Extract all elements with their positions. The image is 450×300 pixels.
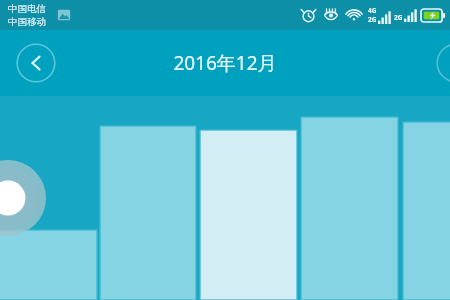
staticText: 中国电信 [8, 3, 46, 15]
staticText: 2G [394, 13, 403, 22]
staticText: 2G [368, 15, 377, 24]
button[interactable]: Forward [436, 43, 450, 83]
button[interactable] [0, 0, 450, 300]
staticText: 4G [368, 6, 377, 15]
other: Selection marker [0, 0, 450, 300]
staticText: 2016年12月 [173, 50, 277, 76]
staticText: 中国移动 [8, 16, 46, 28]
button[interactable]: Back [16, 43, 56, 83]
